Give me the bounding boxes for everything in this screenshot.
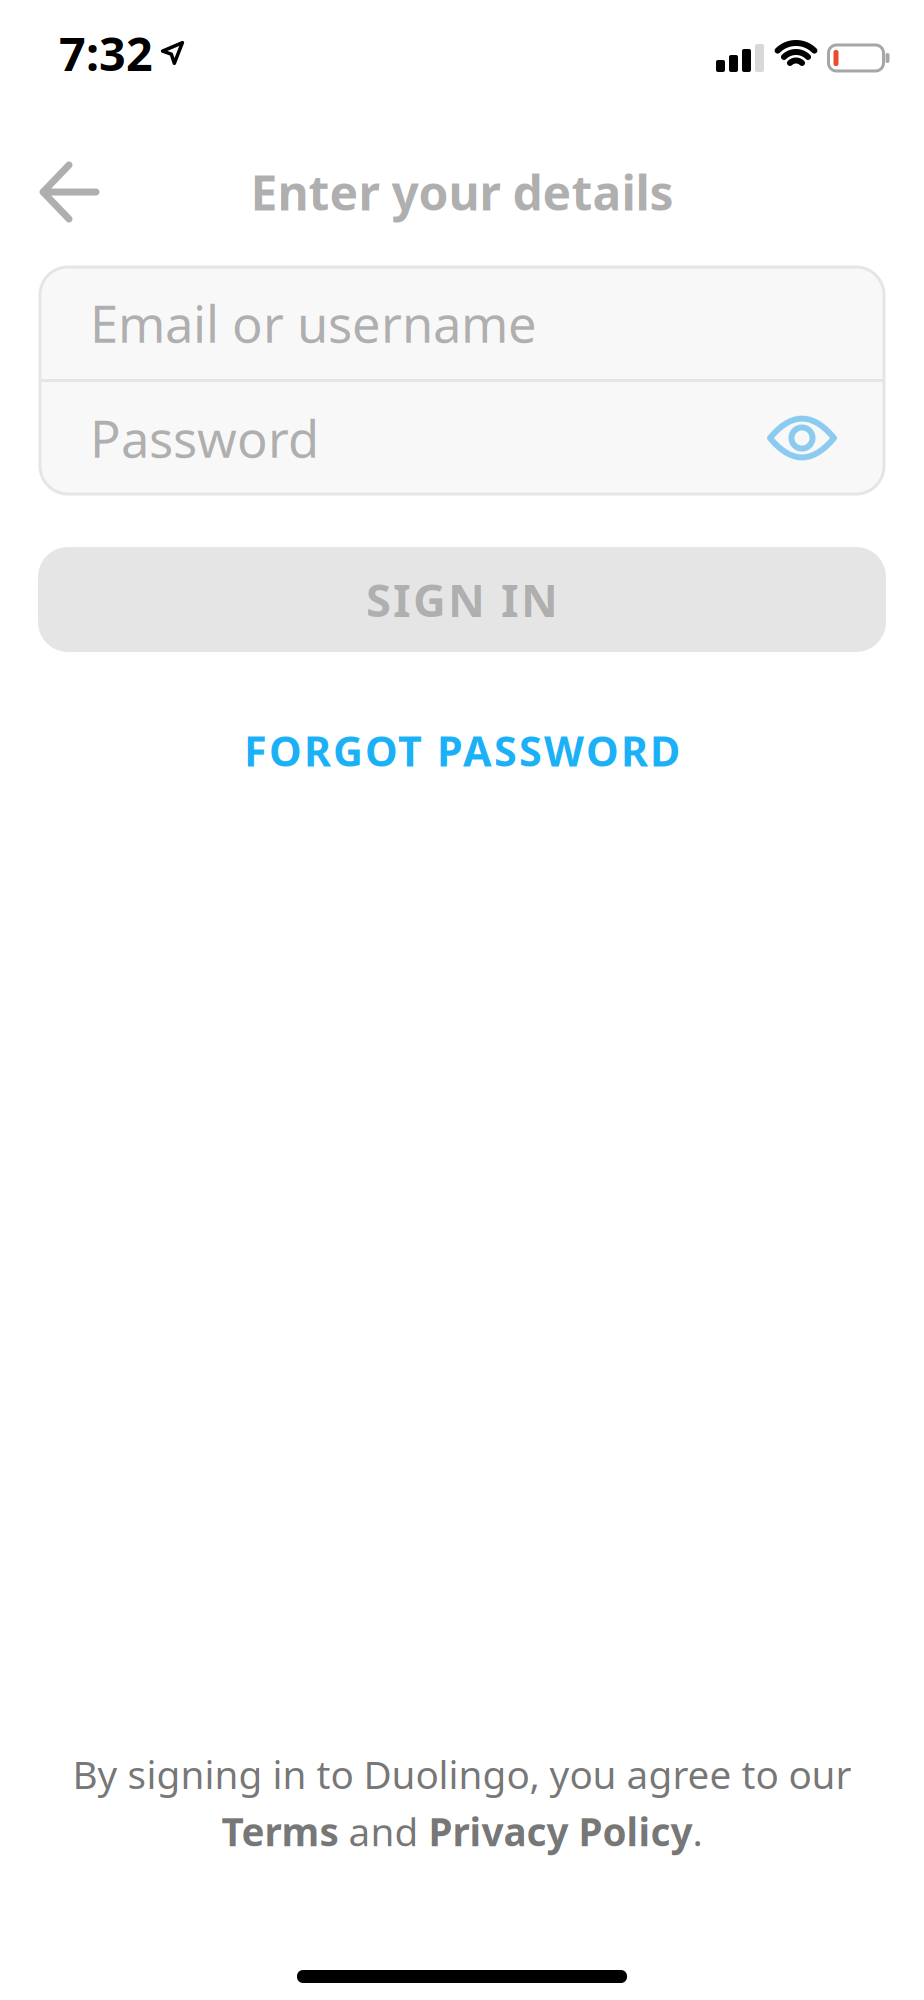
button[interactable]: SIGN IN (38, 547, 886, 652)
button[interactable]: FORGOT PASSWORD (244, 723, 680, 778)
staticText: SIGN IN (366, 569, 558, 630)
button[interactable]: Show password (770, 419, 834, 456)
staticText: By signing in to Duolingo, you agree to … (72, 1748, 851, 1800)
staticText: Enter your details (250, 160, 673, 224)
button[interactable]: Back (0, 164, 96, 220)
staticText: 7:32 (59, 22, 153, 84)
staticText: Password (90, 404, 319, 472)
staticText: Terms and Privacy Policy. (221, 1806, 702, 1857)
staticText: Email or username (90, 289, 537, 357)
staticText: FORGOT PASSWORD (244, 723, 680, 778)
